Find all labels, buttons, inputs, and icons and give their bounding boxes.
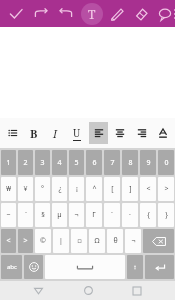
button[interactable]: Format: [132, 122, 151, 144]
staticText: ´: [111, 210, 113, 220]
button[interactable]: Ω: [89, 229, 105, 253]
button[interactable]: I: [46, 122, 65, 144]
button[interactable]: 1: [1, 150, 16, 175]
button[interactable]: |: [53, 229, 69, 253]
button[interactable]: ¬: [125, 229, 141, 253]
staticText: [: [111, 184, 114, 194]
staticText: ₩: [6, 184, 11, 194]
staticText: |: [59, 236, 63, 246]
button[interactable]: ▫: [71, 229, 87, 253]
button[interactable]: B: [24, 122, 43, 144]
staticText: U: [73, 126, 81, 140]
button[interactable]: <: [1, 229, 16, 253]
staticText: B: [30, 126, 38, 141]
button[interactable]: 5: [69, 150, 84, 175]
staticText: Ω: [94, 236, 100, 246]
button[interactable]: ¿: [52, 177, 67, 201]
button[interactable]: Back: [26, 281, 50, 300]
button[interactable]: U: [67, 122, 86, 144]
button[interactable]: 3: [35, 150, 50, 175]
button[interactable]: 9: [140, 150, 156, 175]
button[interactable]: [: [104, 177, 120, 201]
staticText: ¿: [58, 184, 62, 194]
button[interactable]: abc: [1, 255, 22, 279]
staticText: 3: [40, 158, 45, 168]
button[interactable]: Γ: [86, 203, 102, 227]
button[interactable]: ₩: [1, 177, 16, 201]
button[interactable]: >: [18, 229, 33, 253]
button[interactable]: 7: [104, 150, 120, 175]
button[interactable]: Recents: [125, 281, 149, 300]
button[interactable]: Format: [89, 122, 108, 144]
button[interactable]: <: [140, 177, 156, 201]
staticText: ¬: [74, 210, 79, 220]
button[interactable]: θ: [107, 229, 123, 253]
button[interactable]: Undo: [31, 4, 51, 24]
staticText: ▫: [77, 237, 82, 245]
staticText: <: [146, 184, 151, 194]
button[interactable]: ]: [122, 177, 138, 201]
button[interactable]: Format: [3, 122, 22, 144]
button[interactable]: Emoji: [24, 255, 43, 279]
button[interactable]: Settings: [127, 255, 143, 279]
staticText: 7: [110, 158, 115, 168]
button[interactable]: §: [35, 203, 50, 227]
button[interactable]: 4: [52, 150, 67, 175]
staticText: ~: [6, 210, 11, 220]
staticText: ¬: [131, 236, 136, 246]
button[interactable]: µ: [52, 203, 67, 227]
button[interactable]: Text: [81, 3, 103, 25]
staticText: >: [164, 184, 169, 194]
staticText: Γ: [92, 210, 96, 220]
staticText: >: [23, 236, 28, 246]
button[interactable]: Format: [153, 122, 172, 144]
button[interactable]: Enter: [145, 255, 174, 279]
button[interactable]: 0: [158, 150, 174, 175]
staticText: ·: [129, 210, 131, 220]
staticText: 5: [74, 158, 79, 168]
staticText: }: [165, 210, 168, 220]
button[interactable]: ¡: [69, 177, 84, 201]
staticText: 4: [57, 158, 62, 168]
staticText: 6: [92, 158, 97, 168]
button[interactable]: }: [158, 203, 174, 227]
staticText: §: [41, 210, 45, 220]
button[interactable]: Done: [6, 4, 26, 24]
staticText: 0: [164, 158, 169, 168]
button[interactable]: Pen: [107, 4, 127, 24]
button[interactable]: >: [158, 177, 174, 201]
staticText: 8: [128, 158, 133, 168]
staticText: 2: [23, 158, 28, 168]
staticText: ¥: [23, 184, 28, 194]
button[interactable]: °: [35, 177, 50, 201]
button[interactable]: Space: [45, 255, 125, 279]
button[interactable]: ¥: [18, 177, 33, 201]
button[interactable]: ~: [1, 203, 16, 227]
button[interactable]: `: [18, 203, 33, 227]
staticText: ^: [92, 184, 97, 194]
staticText: T: [88, 6, 96, 22]
staticText: °: [41, 184, 44, 194]
button[interactable]: Backspace: [143, 229, 174, 253]
button[interactable]: 6: [86, 150, 102, 175]
button[interactable]: Home: [76, 281, 100, 300]
button[interactable]: 8: [122, 150, 138, 175]
staticText: `: [25, 210, 27, 220]
staticText: 1: [6, 158, 11, 168]
button[interactable]: 2: [18, 150, 33, 175]
staticText: ]: [129, 184, 132, 194]
button[interactable]: Comment: [155, 4, 175, 24]
button[interactable]: ´: [104, 203, 120, 227]
staticText: 9: [146, 158, 151, 168]
button[interactable]: ·: [122, 203, 138, 227]
button[interactable]: ^: [86, 177, 102, 201]
button[interactable]: Redo: [56, 4, 76, 24]
button[interactable]: {: [140, 203, 156, 227]
staticText: µ: [57, 210, 62, 220]
button[interactable]: Format: [110, 122, 129, 144]
button[interactable]: ¬: [69, 203, 84, 227]
staticText: <: [6, 236, 11, 246]
button[interactable]: Eraser: [131, 4, 151, 24]
button[interactable]: ©: [35, 229, 51, 253]
